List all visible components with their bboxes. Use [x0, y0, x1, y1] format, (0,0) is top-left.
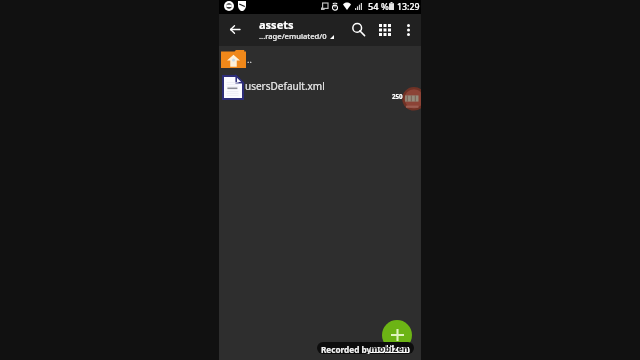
staticText: Recorded by: [321, 344, 372, 354]
staticText: ...rage/emulated/0: [259, 31, 327, 41]
staticText: 250: [392, 92, 403, 100]
staticText: mobizen: [370, 344, 409, 353]
staticText: mobizen: [370, 344, 409, 353]
staticText: mobizen: [370, 343, 409, 352]
staticText: assets: [259, 17, 294, 32]
staticText: mobizen: [371, 343, 410, 352]
staticText: mobizen: [370, 343, 409, 352]
staticText: mobizen: [371, 344, 410, 353]
staticText: 54 %: [368, 0, 389, 13]
staticText: mobizen: [370, 343, 409, 352]
staticText: mobizen: [370, 343, 409, 352]
button[interactable]: Apps grid: [374, 18, 396, 41]
button[interactable]: More options: [397, 18, 419, 41]
button[interactable]: usersDefault.xml: [219, 71, 421, 100]
button[interactable]: ..: [219, 46, 421, 71]
button[interactable]: Add: [382, 320, 412, 350]
button[interactable]: Search: [347, 17, 369, 40]
button[interactable]: Back: [222, 13, 247, 45]
staticText: ..: [247, 53, 252, 65]
staticText: usersDefault.xml: [245, 79, 325, 93]
staticText: mobizen: [371, 343, 410, 352]
staticText: 13:29: [397, 1, 420, 13]
